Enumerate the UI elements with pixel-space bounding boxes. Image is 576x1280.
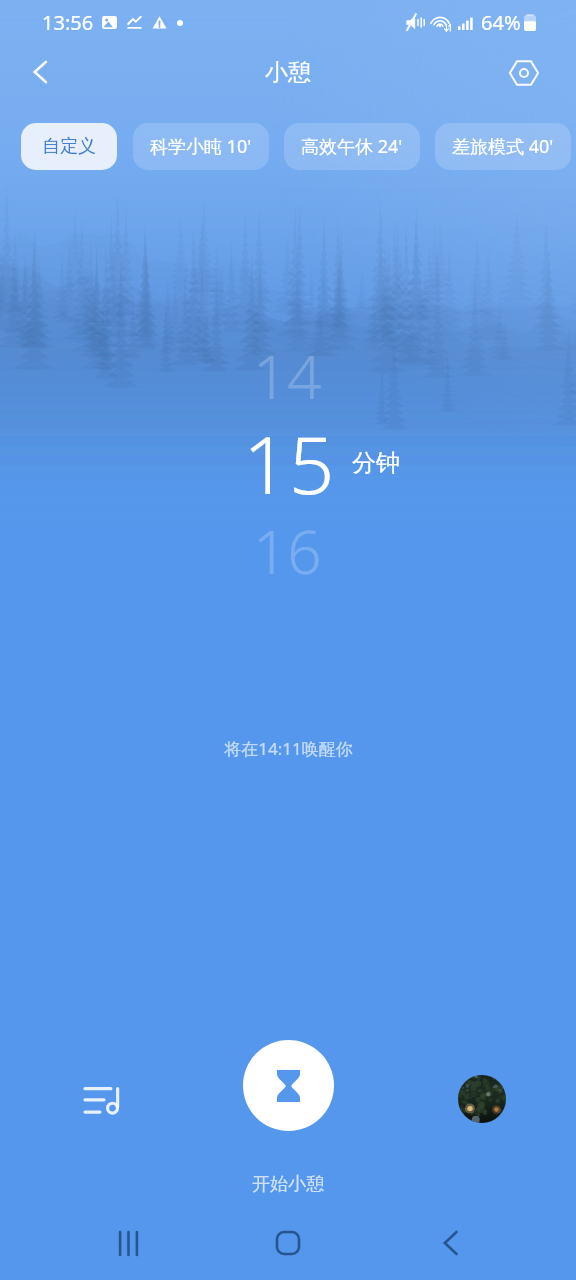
staticText: 64%: [481, 9, 521, 36]
staticText: 13:56: [42, 9, 94, 36]
button[interactable]: Back: [16, 48, 64, 96]
button[interactable]: 科学小盹 10': [133, 123, 269, 170]
button[interactable]: Back: [426, 1219, 474, 1267]
button[interactable]: Soundscape: [458, 1075, 506, 1123]
staticText: 科学小盹 10': [150, 134, 252, 159]
button[interactable]: Start rest: [243, 1040, 334, 1131]
staticText: 自定义: [42, 135, 96, 158]
button[interactable]: 高效午休 24': [284, 123, 420, 170]
button[interactable]: Settings: [500, 49, 548, 97]
staticText: 15: [243, 408, 335, 517]
button[interactable]: Home: [264, 1219, 312, 1267]
staticText: 16: [253, 510, 322, 592]
button[interactable]: 差旅模式 40': [435, 123, 571, 170]
staticText: 分钟: [352, 448, 400, 478]
staticText: 14: [253, 335, 322, 417]
staticText: 开始小憩: [252, 1173, 324, 1196]
staticText: 将在14:11唤醒你: [224, 737, 353, 760]
button[interactable]: Playlist: [74, 1073, 130, 1129]
staticText: 差旅模式 40': [452, 134, 554, 159]
staticText: 小憩: [265, 58, 311, 87]
button[interactable]: Recents: [104, 1219, 152, 1267]
staticText: 高效午休 24': [301, 134, 403, 159]
button[interactable]: 自定义: [21, 123, 117, 170]
